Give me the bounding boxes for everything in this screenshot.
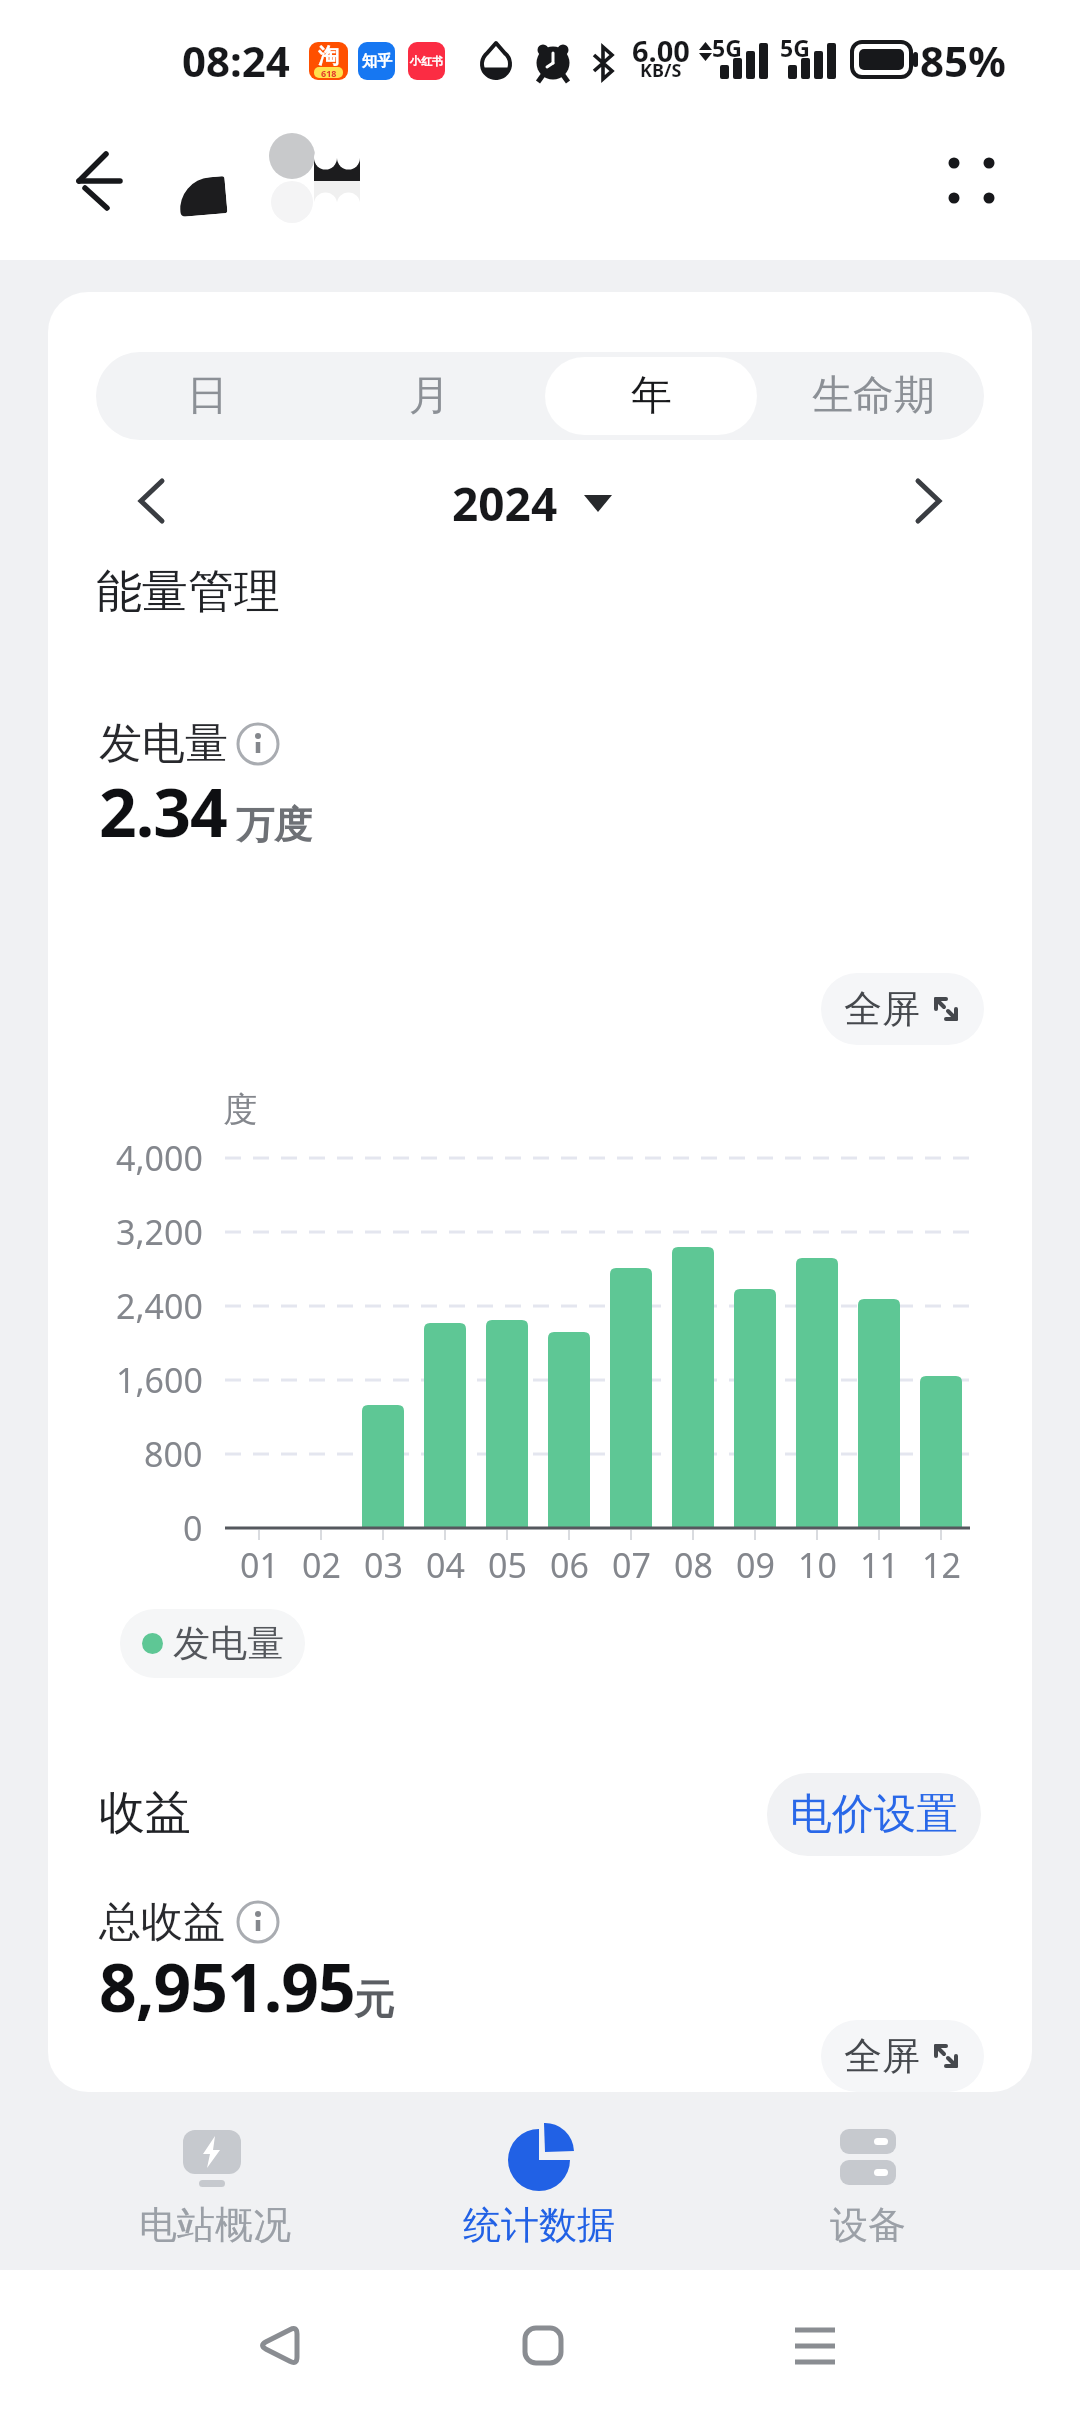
staticText: 设备 bbox=[830, 2201, 906, 2249]
staticText: 10 bbox=[798, 1542, 837, 1588]
staticText: 07 bbox=[612, 1542, 651, 1588]
staticText: 度 bbox=[223, 1088, 257, 1131]
staticText: 总收益 bbox=[99, 1896, 225, 1949]
staticText: 09 bbox=[736, 1542, 775, 1588]
button[interactable]: 电价设置 bbox=[767, 1773, 981, 1856]
staticText: 能量管理 bbox=[96, 563, 280, 621]
staticText: 全屏 bbox=[844, 985, 920, 1033]
staticText: 03 bbox=[364, 1542, 403, 1588]
staticText: 统计数据 bbox=[463, 2201, 615, 2249]
button[interactable]: 电站概况 bbox=[55, 2092, 375, 2270]
staticText: 06 bbox=[550, 1542, 589, 1588]
staticText: 85% bbox=[920, 32, 1006, 89]
staticText: 月 bbox=[409, 370, 450, 422]
staticText: 电价设置 bbox=[790, 1788, 958, 1841]
staticText: 发电量 bbox=[173, 1620, 284, 1667]
button[interactable] bbox=[405, 467, 635, 539]
button[interactable] bbox=[234, 720, 282, 768]
staticText: 全屏 bbox=[844, 2032, 920, 2080]
staticText: 小红书 bbox=[410, 54, 443, 68]
staticText: 4,000 bbox=[116, 1135, 203, 1181]
button[interactable] bbox=[864, 462, 974, 542]
button[interactable]: 月 bbox=[318, 352, 540, 440]
button[interactable]: 生命期 bbox=[762, 352, 984, 440]
staticText: 5G bbox=[712, 32, 742, 63]
button[interactable]: 设备 bbox=[708, 2092, 1028, 2270]
staticText: 11 bbox=[860, 1542, 899, 1588]
button[interactable] bbox=[930, 140, 1020, 224]
staticText: 2,400 bbox=[116, 1283, 203, 1329]
staticText: 生命期 bbox=[812, 370, 935, 422]
staticText: 日 bbox=[187, 370, 228, 422]
staticText: 01 bbox=[240, 1542, 279, 1588]
staticText: 2.34 bbox=[99, 766, 227, 856]
button[interactable] bbox=[493, 2296, 593, 2396]
staticText: 元 bbox=[354, 1974, 394, 2024]
button[interactable]: 全屏 bbox=[821, 973, 984, 1045]
staticText: 05 bbox=[488, 1542, 527, 1588]
staticText: 02 bbox=[302, 1542, 341, 1588]
staticText: 800 bbox=[144, 1431, 203, 1477]
staticText: 发电量 bbox=[99, 717, 228, 771]
staticText: 6.00 bbox=[632, 31, 690, 70]
staticText: 电站概况 bbox=[139, 2201, 291, 2249]
staticText: 08 bbox=[674, 1542, 713, 1588]
staticText: 3,200 bbox=[116, 1209, 203, 1255]
staticText: 2024 bbox=[452, 472, 558, 535]
button[interactable] bbox=[228, 2296, 328, 2396]
staticText: 1,600 bbox=[116, 1357, 203, 1403]
staticText: 8,951.95 bbox=[99, 1941, 355, 2031]
button[interactable]: 统计数据 bbox=[379, 2092, 699, 2270]
staticText: KB/S bbox=[640, 58, 682, 83]
staticText: 5G bbox=[780, 32, 810, 63]
button[interactable]: 全屏 bbox=[821, 2020, 984, 2092]
staticText: 年 bbox=[631, 370, 672, 422]
button[interactable]: 年 bbox=[540, 352, 762, 440]
staticText: 收益 bbox=[99, 1784, 191, 1842]
staticText: 知乎 bbox=[362, 52, 392, 71]
staticText: 0 bbox=[183, 1505, 203, 1551]
button[interactable] bbox=[60, 140, 140, 220]
button[interactable]: 日 bbox=[96, 352, 318, 440]
staticText: 淘 bbox=[318, 43, 339, 69]
staticText: 12 bbox=[922, 1542, 961, 1588]
button[interactable] bbox=[108, 462, 218, 542]
button[interactable] bbox=[765, 2296, 865, 2396]
button[interactable]: 发电量 bbox=[120, 1609, 305, 1678]
button[interactable] bbox=[234, 1898, 282, 1946]
staticText: 08:24 bbox=[182, 32, 290, 89]
staticText: 万度 bbox=[236, 801, 312, 849]
staticText: 04 bbox=[426, 1542, 465, 1588]
staticText: 618 bbox=[321, 67, 337, 78]
